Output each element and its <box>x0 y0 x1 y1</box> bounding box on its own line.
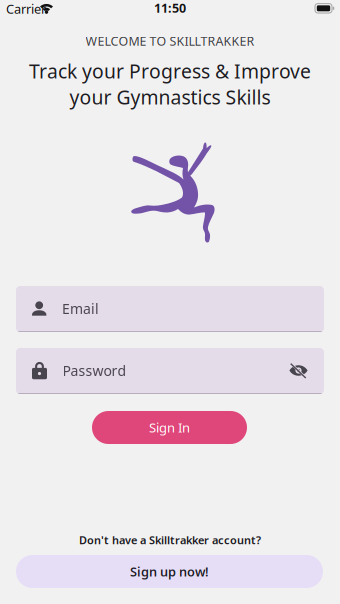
button[interactable]: Email <box>16 286 324 332</box>
button[interactable]: Password <box>16 348 324 394</box>
staticText: Sign up now! <box>130 563 209 580</box>
staticText: Don't have a Skilltrakker account? <box>79 533 261 547</box>
staticText: Track your Progress & Improve <box>29 58 311 84</box>
staticText: WELCOME TO SKILLTRAKKER <box>85 33 254 49</box>
staticText: Carrier <box>6 0 46 17</box>
staticText: Email <box>62 299 99 318</box>
staticText: your Gymnastics Skills <box>69 84 270 110</box>
staticText: Password <box>62 361 126 380</box>
staticText: Sign In <box>149 419 190 436</box>
button[interactable]: Sign In <box>92 411 247 444</box>
staticText: 11:50 <box>154 0 186 16</box>
button[interactable]: Sign up now! <box>16 555 323 588</box>
